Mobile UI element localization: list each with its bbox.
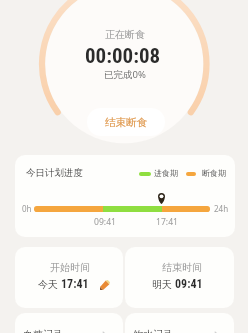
- button[interactable]: [15, 313, 123, 333]
- staticText: 17:41: [156, 216, 178, 228]
- staticText: 已完成0%: [104, 68, 146, 81]
- button[interactable]: [15, 155, 235, 237]
- staticText: 饮水记录: [133, 328, 173, 333]
- button[interactable]: Edit start time: [100, 280, 110, 290]
- other: Current time marker: [158, 193, 165, 204]
- button[interactable]: [125, 313, 234, 333]
- staticText: 24h: [214, 203, 229, 214]
- staticText: 09:41: [175, 277, 203, 291]
- staticText: 结束断食: [105, 116, 148, 129]
- staticText: 明天: [152, 278, 172, 291]
- button[interactable]: 结束断食: [87, 108, 165, 136]
- staticText: 00:00:08: [85, 44, 161, 69]
- staticText: 断食期: [202, 168, 226, 178]
- staticText: 17:41: [61, 277, 89, 291]
- button[interactable]: [125, 247, 234, 308]
- staticText: 09:41: [94, 216, 116, 228]
- staticText: 结束时间: [162, 261, 202, 274]
- staticText: 正在断食: [105, 28, 145, 41]
- staticText: 开始时间: [50, 261, 90, 274]
- staticText: 今天: [38, 278, 58, 291]
- staticText: 0h: [22, 203, 32, 214]
- staticText: 血糖记录: [23, 328, 63, 333]
- button[interactable]: [15, 247, 123, 308]
- staticText: 进食期: [154, 168, 178, 178]
- staticText: 今日计划进度: [26, 167, 83, 179]
